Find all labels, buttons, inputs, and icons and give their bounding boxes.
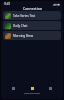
button[interactable]: Explore (27, 83, 38, 93)
staticText: Daily Chat (13, 24, 28, 28)
button[interactable]: Home (8, 83, 19, 93)
staticText: Morning Brew (13, 34, 34, 38)
button[interactable]: Take Series Test (3, 11, 61, 20)
button[interactable]: Morning Brew (3, 31, 61, 40)
staticText: Connection (23, 6, 42, 11)
button[interactable]: Profile (45, 83, 56, 93)
staticText: 9:41 (4, 2, 11, 6)
button[interactable]: Daily Chat (3, 21, 61, 30)
staticText: Take Series Test (13, 14, 36, 18)
